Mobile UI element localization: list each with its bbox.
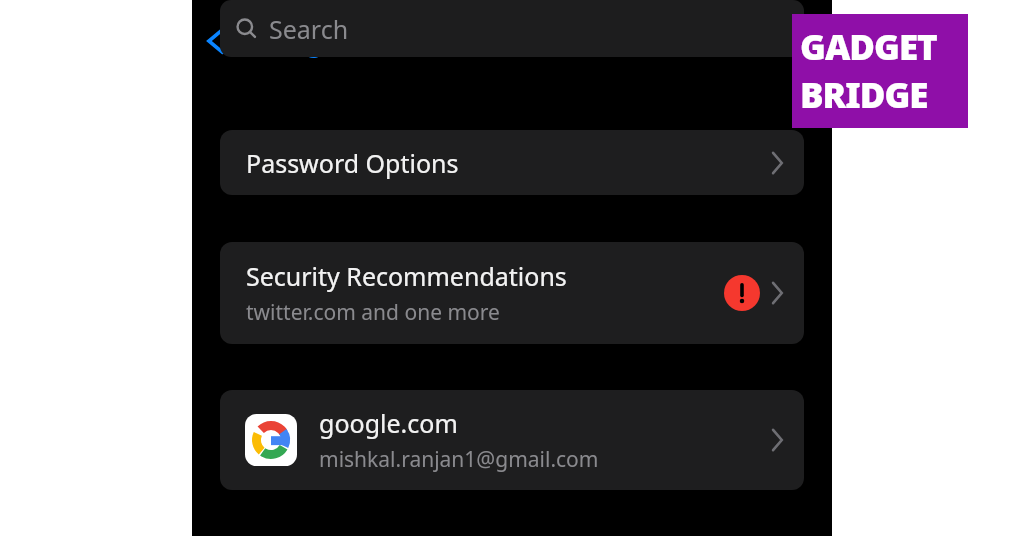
staticText: Passwords: [444, 23, 581, 58]
staticText: Security Recommendations: [246, 259, 567, 293]
staticText: Edit: [775, 22, 824, 59]
staticText: Settings: [233, 22, 336, 59]
button[interactable]: Settings: [192, 18, 346, 63]
staticText: Search: [269, 12, 349, 46]
staticText: Password Options: [246, 146, 770, 180]
staticText: BRIDGE: [800, 71, 928, 119]
button[interactable]: google.com: [220, 390, 804, 490]
staticText: mishkal.ranjan1@gmail.com: [319, 445, 599, 474]
button[interactable]: Add password: [717, 20, 757, 60]
button[interactable]: Password Options: [220, 130, 804, 195]
staticText: google.com: [319, 406, 458, 440]
button[interactable]: Search: [220, 0, 804, 57]
button[interactable]: Edit: [775, 22, 832, 59]
staticText: twitter.com and one more: [246, 298, 500, 327]
button[interactable]: Security Recommendations: [220, 242, 804, 344]
staticText: GADGET: [800, 23, 937, 71]
